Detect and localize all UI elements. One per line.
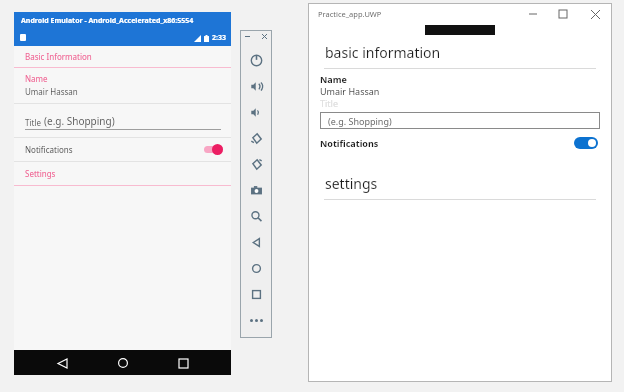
button[interactable]: Title: [14, 113, 231, 129]
button[interactable]: Volume up: [241, 73, 271, 99]
button[interactable]: Recent apps: [171, 351, 195, 375]
button[interactable]: Rotate left: [241, 125, 271, 151]
button[interactable]: (e.g. Shopping): [320, 112, 600, 129]
staticText: Umair Hassan: [25, 86, 78, 97]
button[interactable]: Notifications: [14, 138, 231, 161]
staticText: Umair Hassan: [320, 85, 380, 97]
button[interactable]: Back: [241, 229, 271, 255]
staticText: Title: [25, 117, 44, 128]
button[interactable]: Maximize: [548, 3, 578, 25]
staticText: Notifications: [320, 137, 379, 149]
button[interactable]: Home: [111, 351, 135, 375]
button[interactable]: Volume down: [241, 99, 271, 125]
button[interactable]: Minimize: [518, 3, 548, 25]
button[interactable]: Rotate right: [241, 151, 271, 177]
button[interactable]: Settings: [25, 168, 56, 179]
staticText: Notifications: [25, 144, 73, 155]
staticText: (e.g. Shopping): [44, 114, 115, 128]
button[interactable]: More: [244, 308, 268, 332]
staticText: basic information: [325, 43, 441, 62]
button[interactable]: Minimize: [244, 33, 251, 40]
staticText: Android Emulator - Android_Accelerated_x…: [21, 16, 194, 26]
staticText: Title: [320, 97, 338, 109]
button[interactable]: Home: [241, 255, 271, 281]
staticText: Practice_app.UWP: [318, 9, 382, 19]
button[interactable]: Back: [50, 351, 74, 375]
button[interactable]: Power: [241, 47, 271, 73]
button[interactable]: Zoom: [241, 203, 271, 229]
button[interactable]: Close: [578, 3, 612, 25]
staticText: Basic Information: [25, 51, 92, 62]
staticText: (e.g. Shopping): [328, 115, 392, 127]
staticText: Name: [320, 73, 347, 85]
button[interactable]: Take screenshot: [241, 177, 271, 203]
staticText: Name: [25, 73, 48, 84]
button[interactable]: Close: [261, 33, 268, 40]
staticText: settings: [325, 174, 378, 193]
staticText: 2:33: [212, 33, 226, 43]
button[interactable]: Notifications: [308, 134, 612, 152]
button[interactable]: Recent apps: [241, 281, 271, 307]
